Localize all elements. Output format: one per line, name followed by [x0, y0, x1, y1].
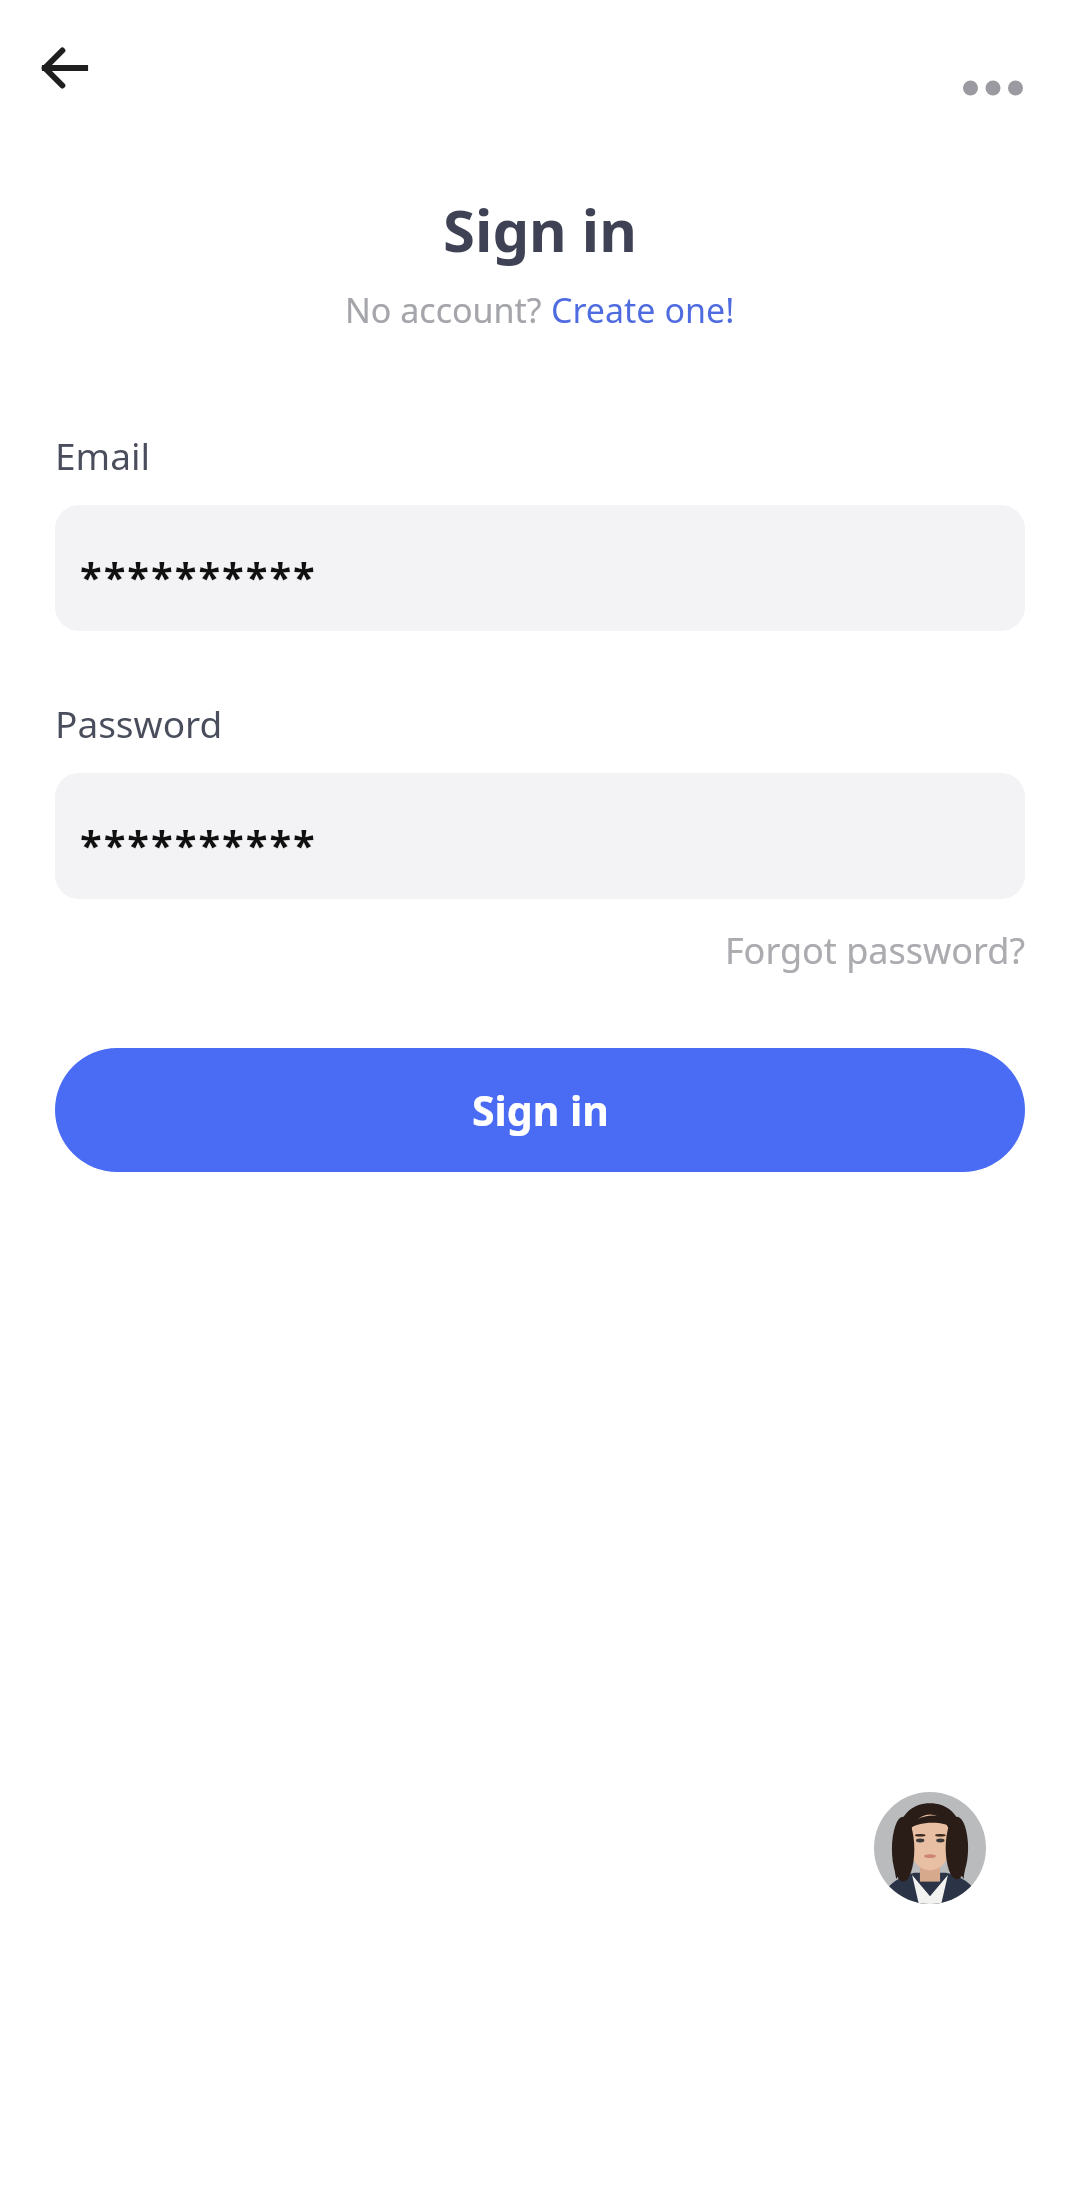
staticText: Email	[55, 430, 151, 480]
button[interactable]: Forgot password?	[645, 918, 1025, 982]
button[interactable]: Sign in	[55, 1048, 1025, 1172]
staticText: Sign in	[472, 1082, 609, 1138]
staticText: No account?	[345, 287, 551, 333]
button[interactable]: Profile	[868, 1786, 992, 1910]
button[interactable]: **********	[55, 505, 1025, 631]
staticText: **********	[80, 817, 317, 871]
button[interactable]: More options	[945, 52, 1041, 124]
staticText: Password	[55, 698, 223, 748]
button[interactable]: **********	[55, 773, 1025, 899]
staticText: **********	[80, 549, 317, 603]
staticText: Sign in	[443, 190, 637, 269]
staticText: Forgot password?	[724, 926, 1025, 975]
button[interactable]: Create one!	[551, 287, 735, 333]
button[interactable]: Back	[20, 33, 90, 103]
staticText: Create one!	[551, 287, 735, 333]
